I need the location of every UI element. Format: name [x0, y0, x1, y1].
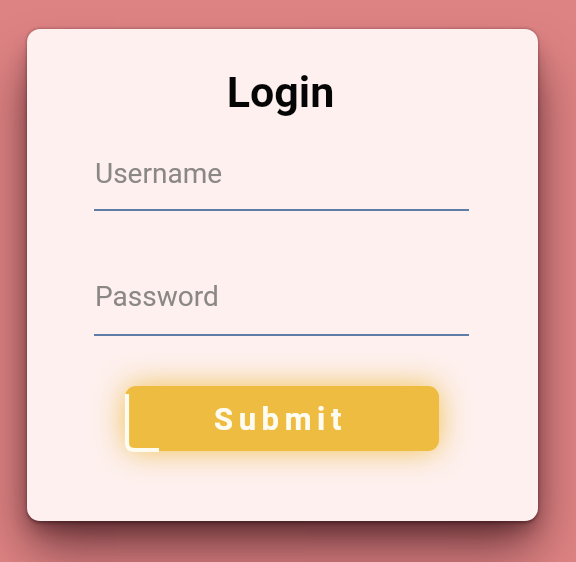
button[interactable]: Submit: [125, 386, 439, 451]
staticText: Username: [95, 157, 223, 190]
staticText: Submit: [214, 401, 348, 437]
staticText: Login: [27, 67, 536, 117]
button[interactable]: Password: [94, 277, 470, 340]
button[interactable]: Username: [94, 154, 470, 214]
staticText: Password: [95, 280, 219, 313]
